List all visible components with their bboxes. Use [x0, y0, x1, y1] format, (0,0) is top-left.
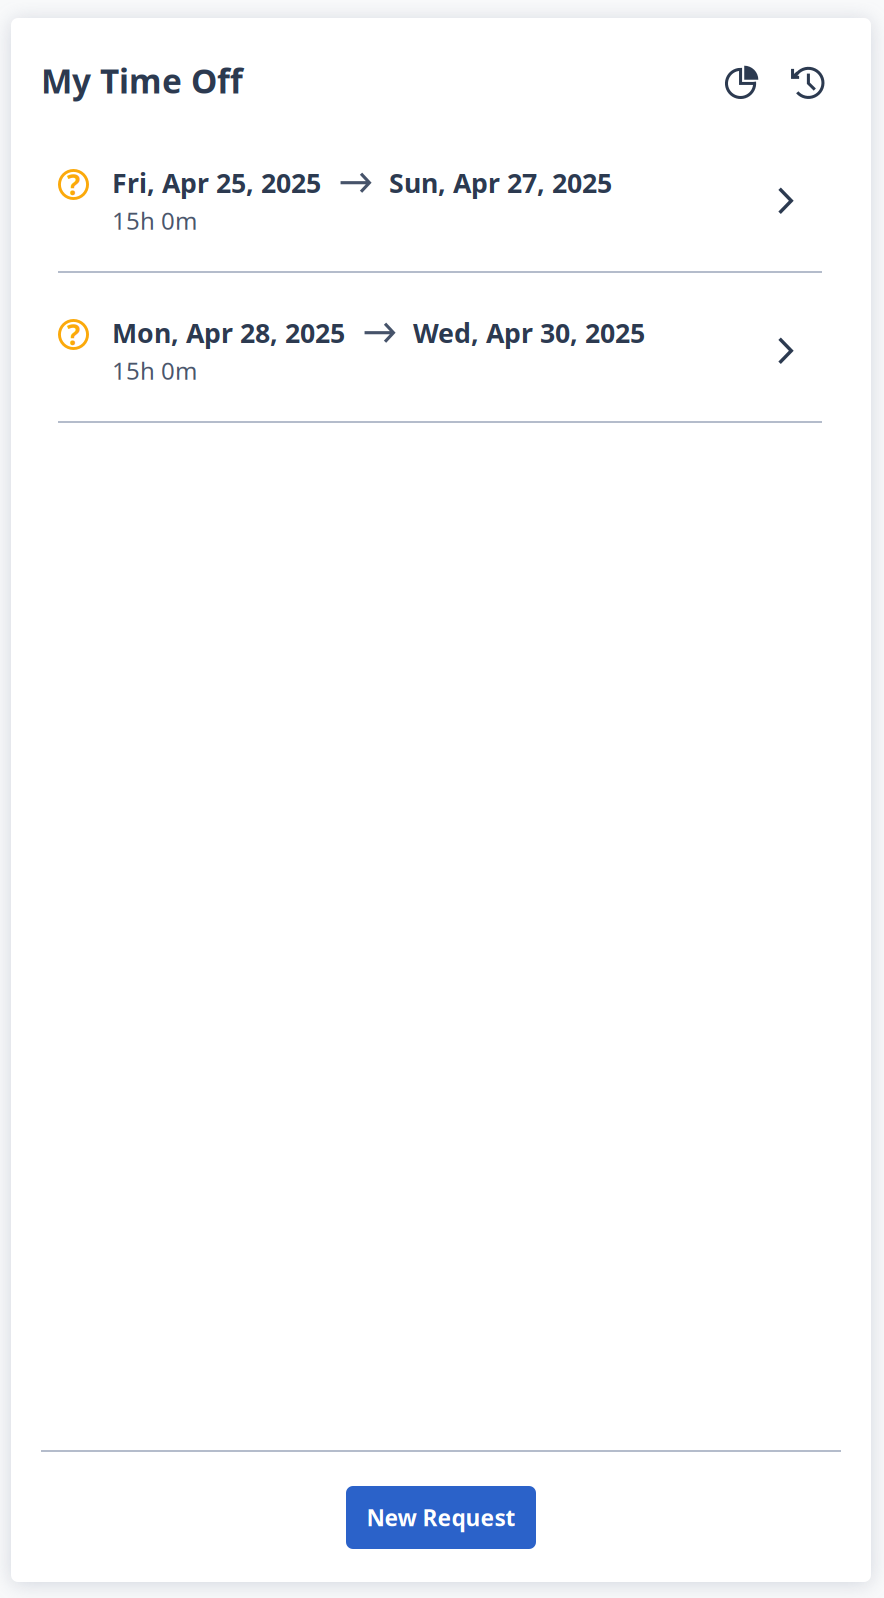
staticText: 15h 0m: [112, 204, 197, 236]
staticText: ?: [67, 166, 80, 203]
staticText: My Time Off: [41, 58, 243, 103]
staticText: Mon, Apr 28, 2025: [112, 315, 345, 350]
button[interactable]: Balances: [719, 56, 765, 105]
button[interactable]: ?: [11, 273, 871, 421]
button[interactable]: New Request: [346, 1486, 536, 1549]
staticText: ?: [67, 316, 80, 353]
staticText: New Request: [366, 1502, 515, 1532]
staticText: Wed, Apr 30, 2025: [413, 315, 645, 350]
staticText: Sun, Apr 27, 2025: [389, 165, 612, 200]
staticText: 15h 0m: [112, 354, 197, 386]
button[interactable]: History: [783, 56, 829, 105]
staticText: Fri, Apr 25, 2025: [112, 165, 321, 200]
button[interactable]: ?: [11, 123, 871, 271]
